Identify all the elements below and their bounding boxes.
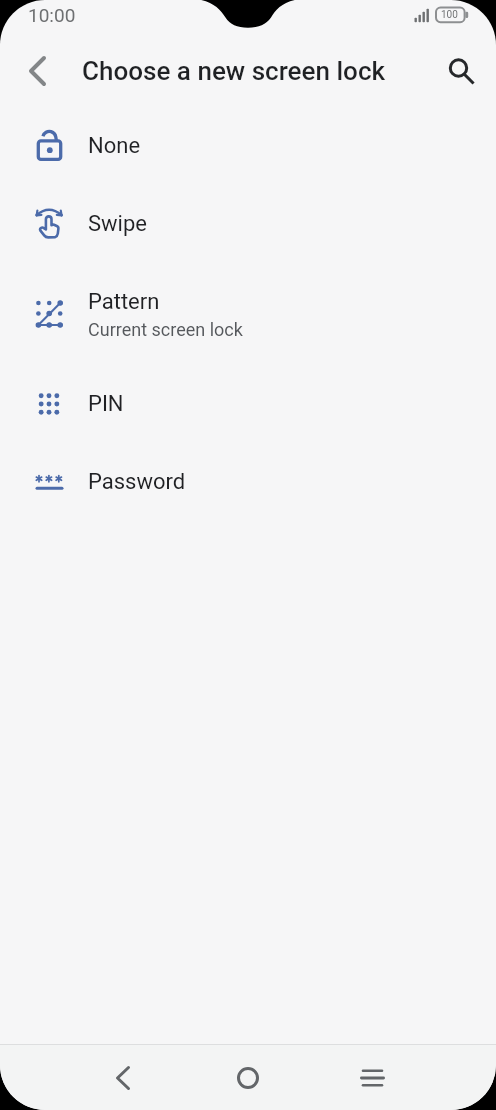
button[interactable]: Pattern — [0, 263, 496, 365]
button[interactable]: Password — [0, 443, 496, 521]
staticText: Current screen lock — [88, 319, 243, 340]
button[interactable] — [343, 1048, 403, 1108]
button[interactable] — [218, 1048, 278, 1108]
staticText: 100 — [441, 9, 458, 21]
staticText: PIN — [88, 391, 124, 417]
button[interactable] — [93, 1048, 153, 1108]
staticText: None — [88, 133, 141, 159]
staticText: Swipe — [88, 211, 147, 237]
button[interactable] — [437, 47, 485, 95]
button[interactable] — [14, 47, 62, 95]
button[interactable]: PIN — [0, 365, 496, 443]
staticText: Pattern — [88, 289, 160, 315]
button[interactable]: None — [0, 107, 496, 185]
staticText: 10:00 — [28, 4, 76, 26]
button[interactable]: Swipe — [0, 185, 496, 263]
staticText: Choose a new screen lock — [82, 56, 386, 86]
staticText: Password — [88, 469, 186, 495]
